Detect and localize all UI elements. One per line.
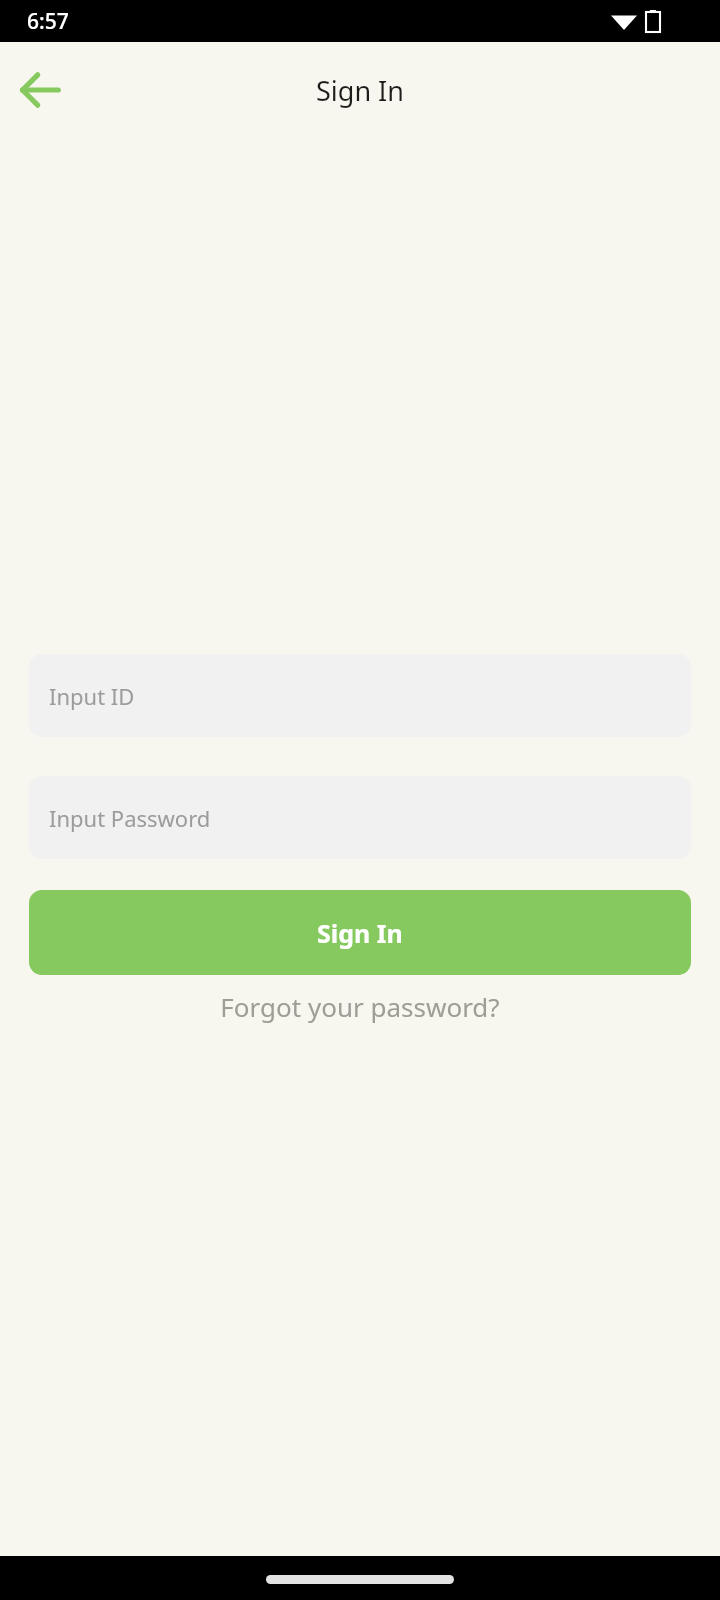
staticText: Input Password — [49, 803, 211, 833]
button[interactable]: Forgot your password? — [29, 975, 691, 1037]
staticText: Sign In — [317, 916, 403, 950]
staticText: Forgot your password? — [220, 989, 500, 1024]
button[interactable]: Input ID — [29, 654, 691, 737]
button[interactable]: Input Password — [29, 776, 691, 859]
staticText: Sign In — [316, 72, 404, 109]
button[interactable]: Sign In — [29, 890, 691, 975]
staticText: 6:57 — [27, 7, 69, 36]
staticText: Input ID — [49, 681, 135, 711]
button[interactable]: Back — [12, 62, 68, 118]
